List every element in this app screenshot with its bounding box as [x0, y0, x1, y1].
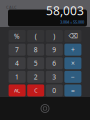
- button[interactable]: %: [9, 30, 26, 42]
- button[interactable]: 4: [9, 57, 26, 69]
- staticText: 8: [34, 45, 38, 54]
- staticText: 5: [34, 59, 38, 68]
- staticText: −: [71, 72, 75, 81]
- staticText: ): [53, 32, 55, 40]
- staticText: 9: [52, 45, 56, 54]
- button[interactable]: +: [64, 44, 81, 56]
- button[interactable]: 9: [46, 44, 63, 56]
- button[interactable]: 2: [27, 71, 44, 83]
- button[interactable]: −: [64, 71, 81, 83]
- staticText: %: [14, 32, 20, 40]
- staticText: 6: [52, 59, 56, 68]
- button[interactable]: 6: [46, 57, 63, 69]
- staticText: ×: [71, 59, 75, 68]
- button[interactable]: 5: [27, 57, 44, 69]
- staticText: 58,003: [46, 3, 84, 19]
- button[interactable]: AC: [9, 84, 26, 96]
- button[interactable]: =: [64, 84, 81, 96]
- button[interactable]: ×: [64, 57, 81, 69]
- staticText: 3,004 + 55,000: [60, 19, 84, 24]
- staticText: +: [71, 45, 75, 54]
- staticText: ⌫: [68, 32, 77, 40]
- button[interactable]: ): [46, 30, 63, 42]
- button[interactable]: 7: [9, 44, 26, 56]
- button[interactable]: 1: [9, 71, 26, 83]
- button[interactable]: 8: [27, 44, 44, 56]
- staticText: (: [35, 32, 37, 40]
- staticText: 3: [52, 72, 56, 81]
- button[interactable]: 0: [46, 84, 63, 96]
- staticText: CALC: [6, 4, 17, 10]
- button[interactable]: C: [27, 84, 44, 96]
- staticText: 4: [15, 59, 19, 68]
- staticText: 2: [34, 72, 38, 81]
- staticText: =: [71, 86, 75, 95]
- staticText: 1: [15, 72, 19, 81]
- staticText: AC: [14, 87, 20, 94]
- staticText: 0: [52, 86, 56, 95]
- button[interactable]: 3: [46, 71, 63, 83]
- staticText: C: [34, 87, 37, 94]
- button[interactable]: ⌫: [64, 30, 81, 42]
- button[interactable]: (: [27, 30, 44, 42]
- staticText: 7: [15, 45, 19, 54]
